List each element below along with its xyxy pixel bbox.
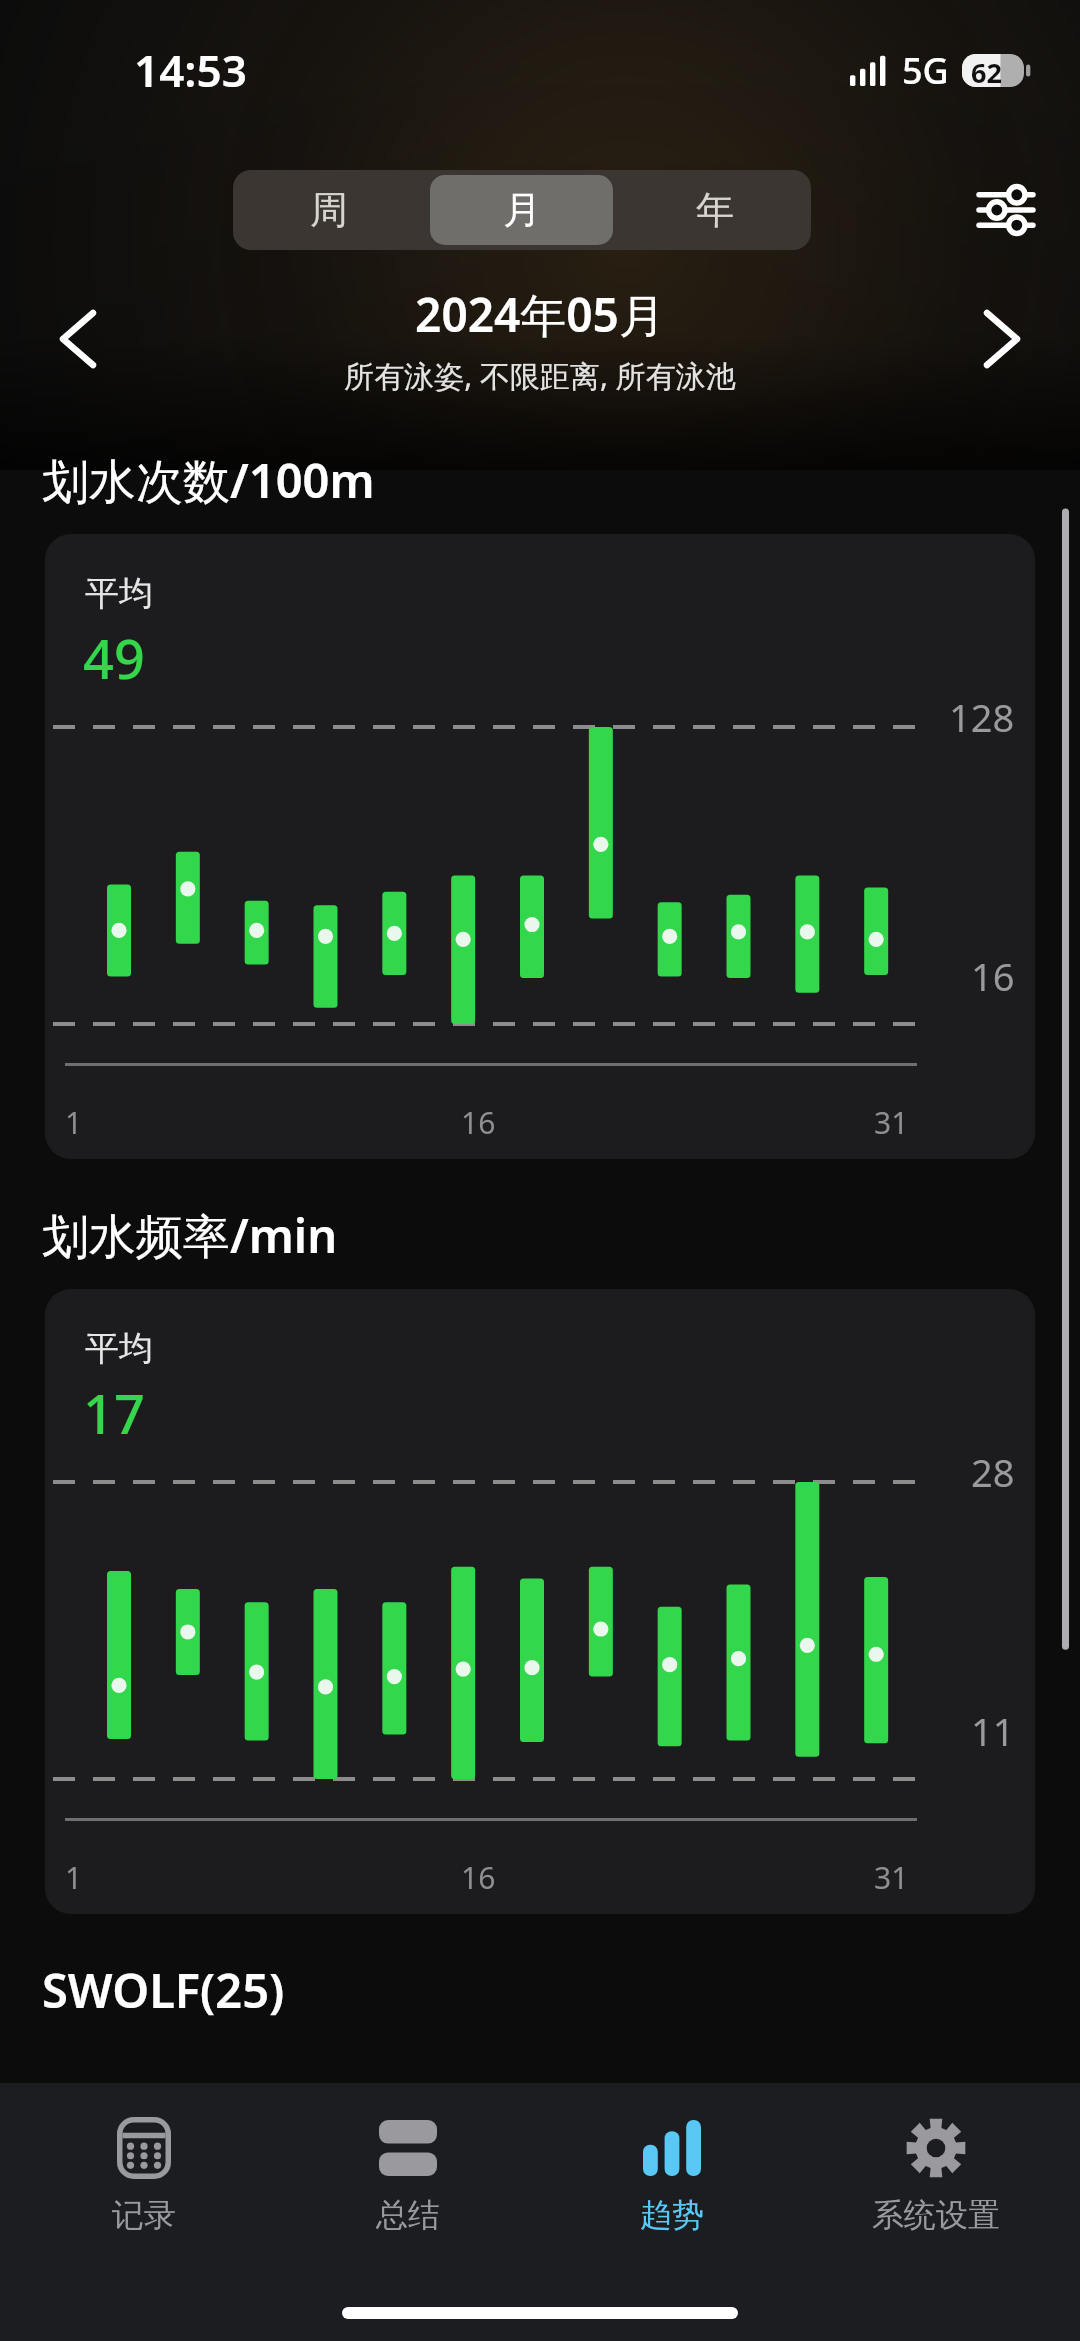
button[interactable]: 总结 <box>288 2115 528 2235</box>
button[interactable]: 平均 <box>45 1289 1035 1914</box>
staticText: 记录 <box>112 2195 176 2235</box>
staticText: 31 <box>874 1857 909 1898</box>
button[interactable]: 系统设置 <box>816 2115 1056 2235</box>
staticText: 所有泳姿, 不限距离, 所有泳池 <box>344 355 736 396</box>
staticText: SWOLF(25) <box>42 1958 285 2022</box>
staticText: 系统设置 <box>872 2195 1000 2235</box>
button[interactable]: 月 <box>430 175 613 245</box>
staticText: 49 <box>83 621 145 695</box>
staticText: 16 <box>461 1857 496 1898</box>
staticText: 16 <box>971 950 1015 1002</box>
staticText: 1 <box>65 1102 83 1143</box>
staticText: 62 <box>971 54 1002 87</box>
staticText: 周 <box>310 186 348 234</box>
staticText: 28 <box>971 1446 1015 1498</box>
staticText: 128 <box>949 691 1015 743</box>
button[interactable]: 周 <box>238 175 420 245</box>
staticText: 31 <box>874 1102 909 1143</box>
staticText: 趋势 <box>640 2195 704 2235</box>
staticText: 平均 <box>85 1327 153 1370</box>
button[interactable]: 平均 <box>45 534 1035 1159</box>
staticText: 划水次数/100m <box>42 448 375 512</box>
button[interactable]: 下一月 <box>954 291 1050 387</box>
staticText: 17 <box>83 1376 145 1450</box>
button[interactable]: 记录 <box>24 2115 264 2235</box>
staticText: 总结 <box>376 2195 440 2235</box>
staticText: 月 <box>503 186 541 234</box>
button[interactable]: 上一月 <box>30 291 126 387</box>
staticText: 14:53 <box>134 40 247 100</box>
staticText: 划水频率/min <box>42 1203 338 1267</box>
staticText: 2024年05月 <box>415 283 665 346</box>
button[interactable]: 趋势 <box>552 2115 792 2235</box>
staticText: 1 <box>65 1857 83 1898</box>
staticText: 16 <box>461 1102 496 1143</box>
staticText: 5G <box>902 46 949 95</box>
staticText: 平均 <box>85 572 153 615</box>
staticText: 年 <box>696 186 734 234</box>
staticText: 11 <box>971 1705 1015 1757</box>
button[interactable]: 年 <box>623 175 806 245</box>
button[interactable]: 筛选 <box>968 172 1044 248</box>
